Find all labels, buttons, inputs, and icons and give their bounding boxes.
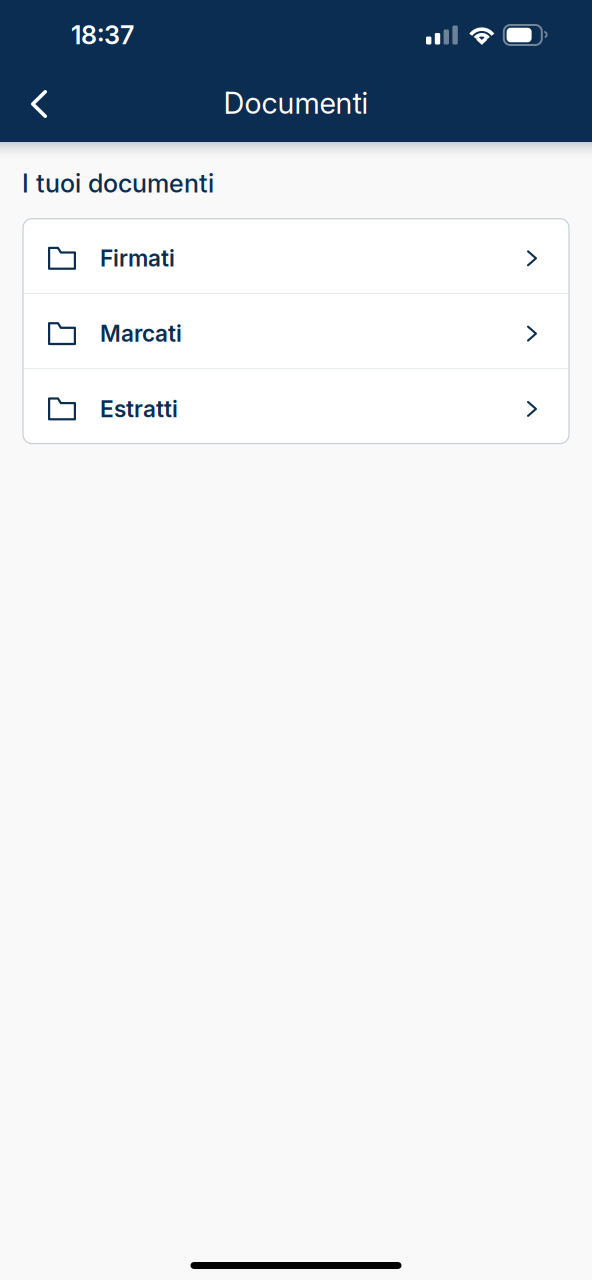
staticText: I tuoi documenti xyxy=(22,168,214,199)
staticText: Firmati xyxy=(100,245,175,272)
staticText: Marcati xyxy=(100,320,182,347)
staticText: Estratti xyxy=(100,395,178,423)
button[interactable]: Back xyxy=(0,71,69,135)
staticText: 18:37 xyxy=(71,20,134,50)
button[interactable]: Estratti xyxy=(23,369,569,444)
button[interactable]: Firmati xyxy=(23,219,569,293)
staticText: Documenti xyxy=(223,85,368,121)
button[interactable]: Marcati xyxy=(23,294,569,368)
